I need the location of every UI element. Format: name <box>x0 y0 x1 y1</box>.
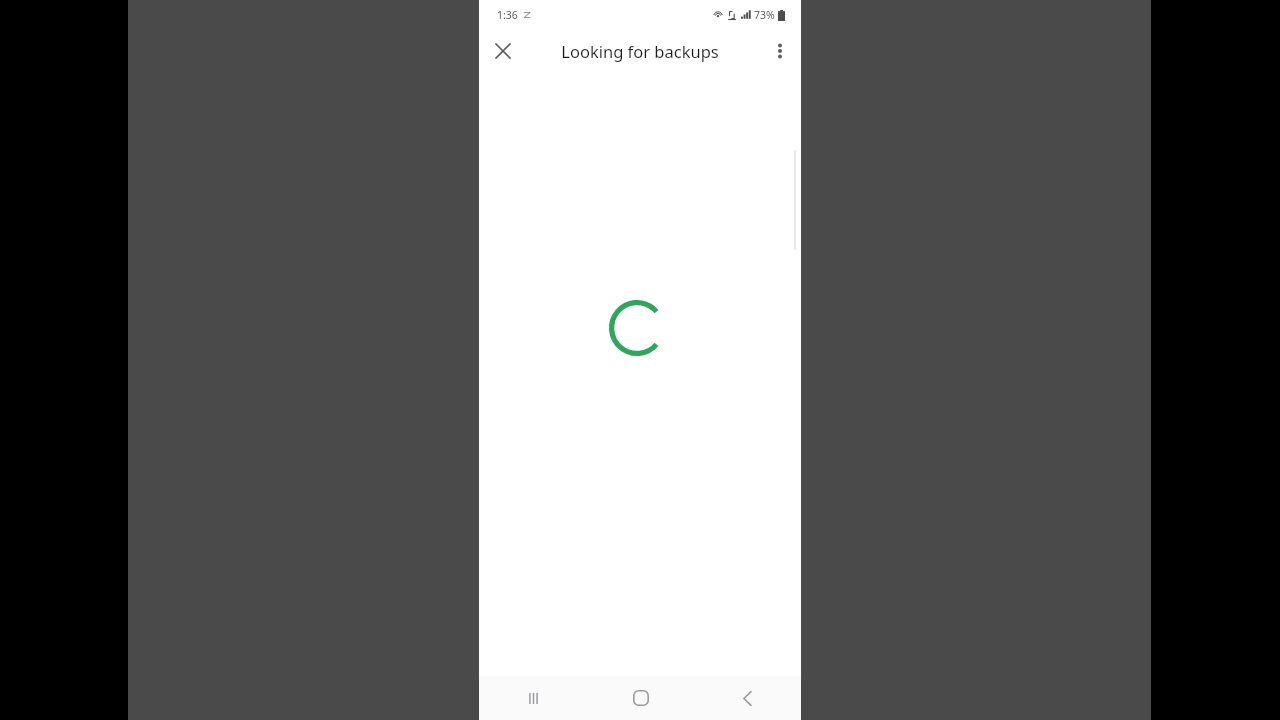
button[interactable]: Home <box>587 676 694 720</box>
staticText: Looking for backups <box>561 40 719 62</box>
button[interactable]: Back <box>694 676 801 720</box>
button[interactable]: More options <box>762 33 798 69</box>
staticText: 1:36 <box>497 8 518 22</box>
button[interactable]: Close <box>485 33 521 69</box>
staticText: 73% <box>754 8 775 22</box>
button[interactable]: Recent apps <box>479 676 587 720</box>
